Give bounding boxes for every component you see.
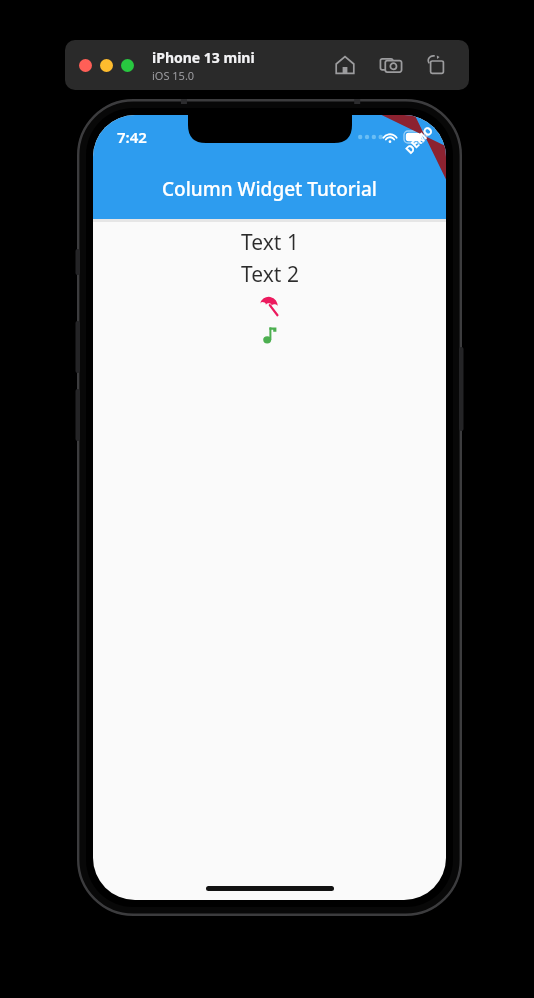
staticText: iPhone 13 mini (152, 48, 255, 67)
staticText: Text 2 (241, 260, 299, 289)
staticText: DEMO (402, 122, 436, 157)
button[interactable]: Close (79, 59, 92, 72)
staticText: 7:42 (117, 127, 147, 147)
staticText: Text 1 (241, 228, 299, 257)
button[interactable]: Minimize (100, 59, 113, 72)
other: Beach access (257, 293, 283, 319)
staticText: iOS 15.0 (152, 68, 195, 83)
button[interactable]: Screenshot (375, 49, 407, 81)
button[interactable]: Rotate (421, 49, 453, 81)
other: Audio track (257, 322, 283, 348)
button[interactable]: Zoom (121, 59, 134, 72)
button[interactable]: Home (329, 49, 361, 81)
staticText: Column Widget Tutorial (162, 176, 377, 202)
